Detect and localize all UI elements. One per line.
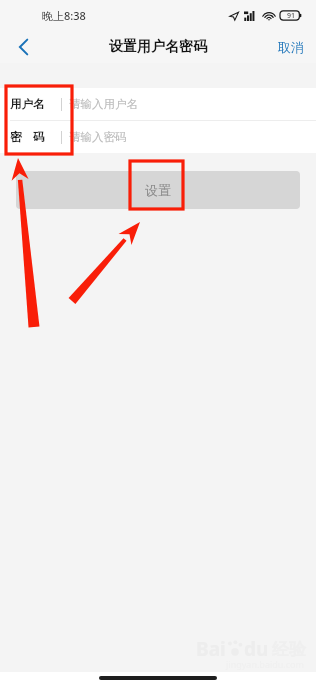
staticText: Bai: [196, 636, 226, 662]
button[interactable]: 设置: [16, 171, 300, 209]
staticText: 密 码: [10, 129, 54, 145]
staticText: 取消: [278, 39, 304, 55]
button[interactable]: 密 码: [0, 121, 316, 153]
staticText: 请输入密码: [69, 130, 127, 144]
staticText: 请输入用户名: [69, 97, 138, 111]
staticText: 设置: [145, 182, 171, 198]
staticText: 晚上8:38: [42, 8, 86, 23]
staticText: 用户名: [10, 97, 54, 111]
staticText: 设置用户名密码: [109, 38, 207, 56]
staticText: 91: [287, 11, 296, 21]
button[interactable]: 取消: [266, 30, 316, 63]
button[interactable]: 用户名: [0, 88, 316, 120]
button[interactable]: Back: [0, 30, 46, 63]
